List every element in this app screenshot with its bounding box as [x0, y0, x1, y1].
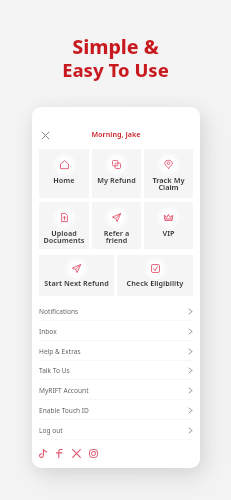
staticText: Upload Documents — [39, 228, 89, 245]
staticText: My Refund — [92, 175, 141, 185]
staticText: VIP — [144, 228, 193, 238]
button[interactable]: Log out — [32, 420, 200, 440]
button[interactable]: Inbox — [32, 321, 200, 341]
staticText: Track My Claim — [144, 175, 193, 192]
staticText: Simple & — [0, 33, 231, 60]
button[interactable]: Enable Touch ID — [32, 400, 200, 420]
button[interactable]: Talk To Us — [32, 360, 200, 380]
button[interactable]: VIP — [144, 202, 193, 249]
button[interactable]: Close — [40, 130, 51, 141]
button[interactable]: MyRIFT Account — [32, 380, 200, 400]
staticText: Notifications — [39, 307, 79, 316]
button[interactable]: My Refund — [92, 149, 141, 198]
button[interactable]: Check Eligibility — [117, 255, 193, 296]
button[interactable]: Start Next Refund — [39, 255, 114, 296]
staticText: MyRIFT Account — [39, 386, 89, 395]
staticText: Talk To Us — [39, 366, 70, 375]
staticText: Easy To Use — [0, 57, 231, 82]
staticText: Home — [39, 175, 89, 185]
staticText: Check Eligibility — [117, 278, 193, 288]
staticText: Help & Extras — [39, 347, 81, 356]
button[interactable]: Home — [39, 149, 89, 198]
button[interactable]: Refer a friend — [92, 202, 141, 249]
button[interactable]: X — [71, 448, 82, 459]
button[interactable]: Track My Claim — [144, 149, 193, 198]
staticText: Enable Touch ID — [39, 406, 89, 415]
staticText: Morning, Jake — [32, 129, 200, 139]
staticText: Start Next Refund — [39, 278, 114, 288]
staticText: Inbox — [39, 327, 57, 336]
button[interactable]: Facebook — [54, 448, 65, 459]
staticText: Refer a friend — [92, 228, 141, 245]
button[interactable]: Upload Documents — [39, 202, 89, 249]
staticText: Log out — [39, 426, 63, 435]
button[interactable]: Help & Extras — [32, 341, 200, 361]
button[interactable]: Notifications — [32, 301, 200, 321]
button[interactable]: TikTok — [37, 448, 48, 459]
button[interactable]: Instagram — [88, 448, 99, 459]
